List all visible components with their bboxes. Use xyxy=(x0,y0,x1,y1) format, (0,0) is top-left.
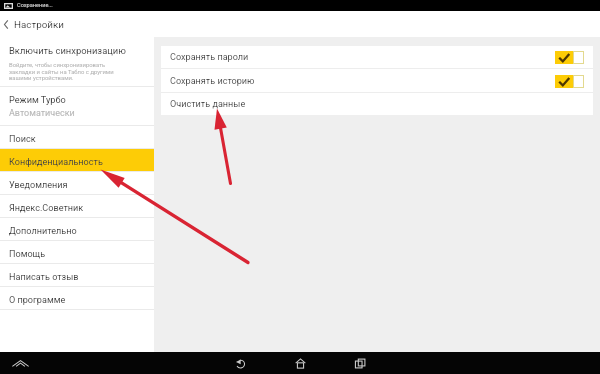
staticText: Яндекс.Советник xyxy=(9,203,84,214)
staticText: О программе xyxy=(9,295,66,306)
staticText: Режим Турбо xyxy=(9,94,66,105)
button[interactable]: Помощь xyxy=(0,241,154,264)
button[interactable]: Включить синхронизацию xyxy=(0,37,154,87)
staticText: Включить синхронизацию xyxy=(9,45,126,56)
button[interactable]: Поиск xyxy=(0,126,154,149)
button[interactable]: Toggle on xyxy=(555,75,584,88)
button[interactable]: Режим Турбо xyxy=(0,87,154,126)
button[interactable]: Дополнительно xyxy=(0,218,154,241)
button[interactable]: О программе xyxy=(0,287,154,310)
staticText: Войдите, чтобы синхронизировать закладки… xyxy=(9,62,114,81)
staticText: Автоматически xyxy=(9,108,75,119)
button[interactable]: Очистить данные xyxy=(161,93,593,115)
button[interactable]: Toggle on xyxy=(555,51,584,64)
button[interactable]: Launcher xyxy=(10,353,30,373)
staticText: Сохранять историю xyxy=(170,76,255,87)
button[interactable]: Back xyxy=(0,12,11,36)
staticText: Дополнительно xyxy=(9,226,77,237)
button[interactable]: Home xyxy=(283,352,317,374)
staticText: Написать отзыв xyxy=(9,272,79,283)
button[interactable]: Back xyxy=(223,352,257,374)
staticText: Сохранение... xyxy=(17,2,53,9)
staticText: Настройки xyxy=(14,19,64,30)
staticText: Сохранять пароли xyxy=(170,52,249,63)
staticText: Уведомления xyxy=(9,180,68,191)
staticText: Поиск xyxy=(9,134,36,145)
button[interactable]: Уведомления xyxy=(0,172,154,195)
button[interactable]: Сохранять пароли xyxy=(161,46,593,69)
staticText: Помощь xyxy=(9,249,46,260)
button[interactable]: Написать отзыв xyxy=(0,264,154,287)
button[interactable]: Яндекс.Советник xyxy=(0,195,154,218)
staticText: Конфиденциальность xyxy=(9,157,103,168)
button[interactable]: Сохранять историю xyxy=(161,69,593,93)
button[interactable]: Конфиденциальность xyxy=(0,149,154,172)
staticText: Очистить данные xyxy=(170,99,246,110)
button[interactable]: Recent apps xyxy=(343,352,377,374)
